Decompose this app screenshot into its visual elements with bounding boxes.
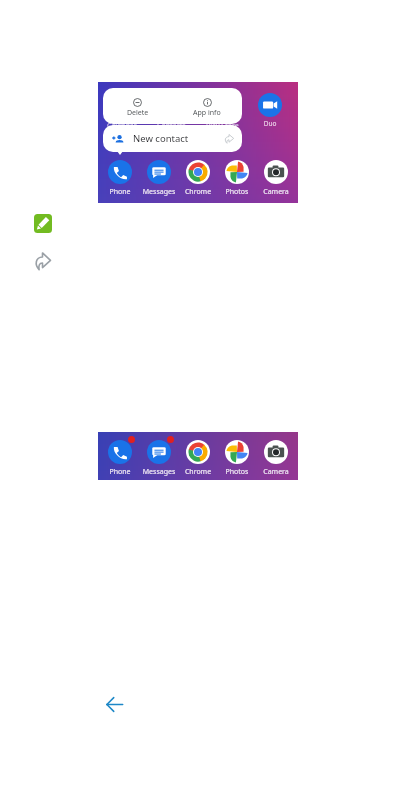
staticText: Phone <box>101 187 139 197</box>
staticText: Play Store <box>206 121 239 127</box>
button[interactable]: Share <box>34 252 51 271</box>
staticText: Camera <box>257 467 295 477</box>
button[interactable]: New contact <box>103 125 242 152</box>
staticText: Duo <box>254 119 286 128</box>
staticText: Chrome <box>179 187 217 197</box>
button[interactable]: Messages <box>140 158 178 192</box>
button[interactable]: Camera <box>257 158 295 192</box>
button[interactable]: Camera <box>257 438 295 472</box>
staticText: Calendar <box>107 121 137 127</box>
button[interactable]: Phone <box>101 158 139 192</box>
staticText: Delete <box>127 108 149 118</box>
button[interactable]: App info <box>172 88 242 124</box>
button[interactable]: Edit <box>34 214 52 233</box>
staticText: Contacts <box>157 121 186 127</box>
button[interactable]: Photos <box>218 438 256 472</box>
button[interactable]: Phone <box>101 438 139 472</box>
button[interactable]: Delete <box>103 88 172 124</box>
staticText: Camera <box>257 187 295 197</box>
button[interactable]: Back <box>105 695 124 714</box>
button[interactable]: Messages <box>140 438 178 472</box>
staticText: Photos <box>218 467 256 477</box>
staticText: Messages <box>140 187 178 197</box>
button[interactable]: Chrome <box>179 158 217 192</box>
staticText: App info <box>193 108 221 118</box>
button[interactable]: Duo <box>258 93 282 117</box>
staticText: Photos <box>218 187 256 197</box>
staticText: Messages <box>140 467 178 477</box>
staticText: Chrome <box>179 467 217 477</box>
staticText: New contact <box>133 132 189 145</box>
staticText: Phone <box>101 467 139 477</box>
button[interactable]: Chrome <box>179 438 217 472</box>
button[interactable]: Photos <box>218 158 256 192</box>
